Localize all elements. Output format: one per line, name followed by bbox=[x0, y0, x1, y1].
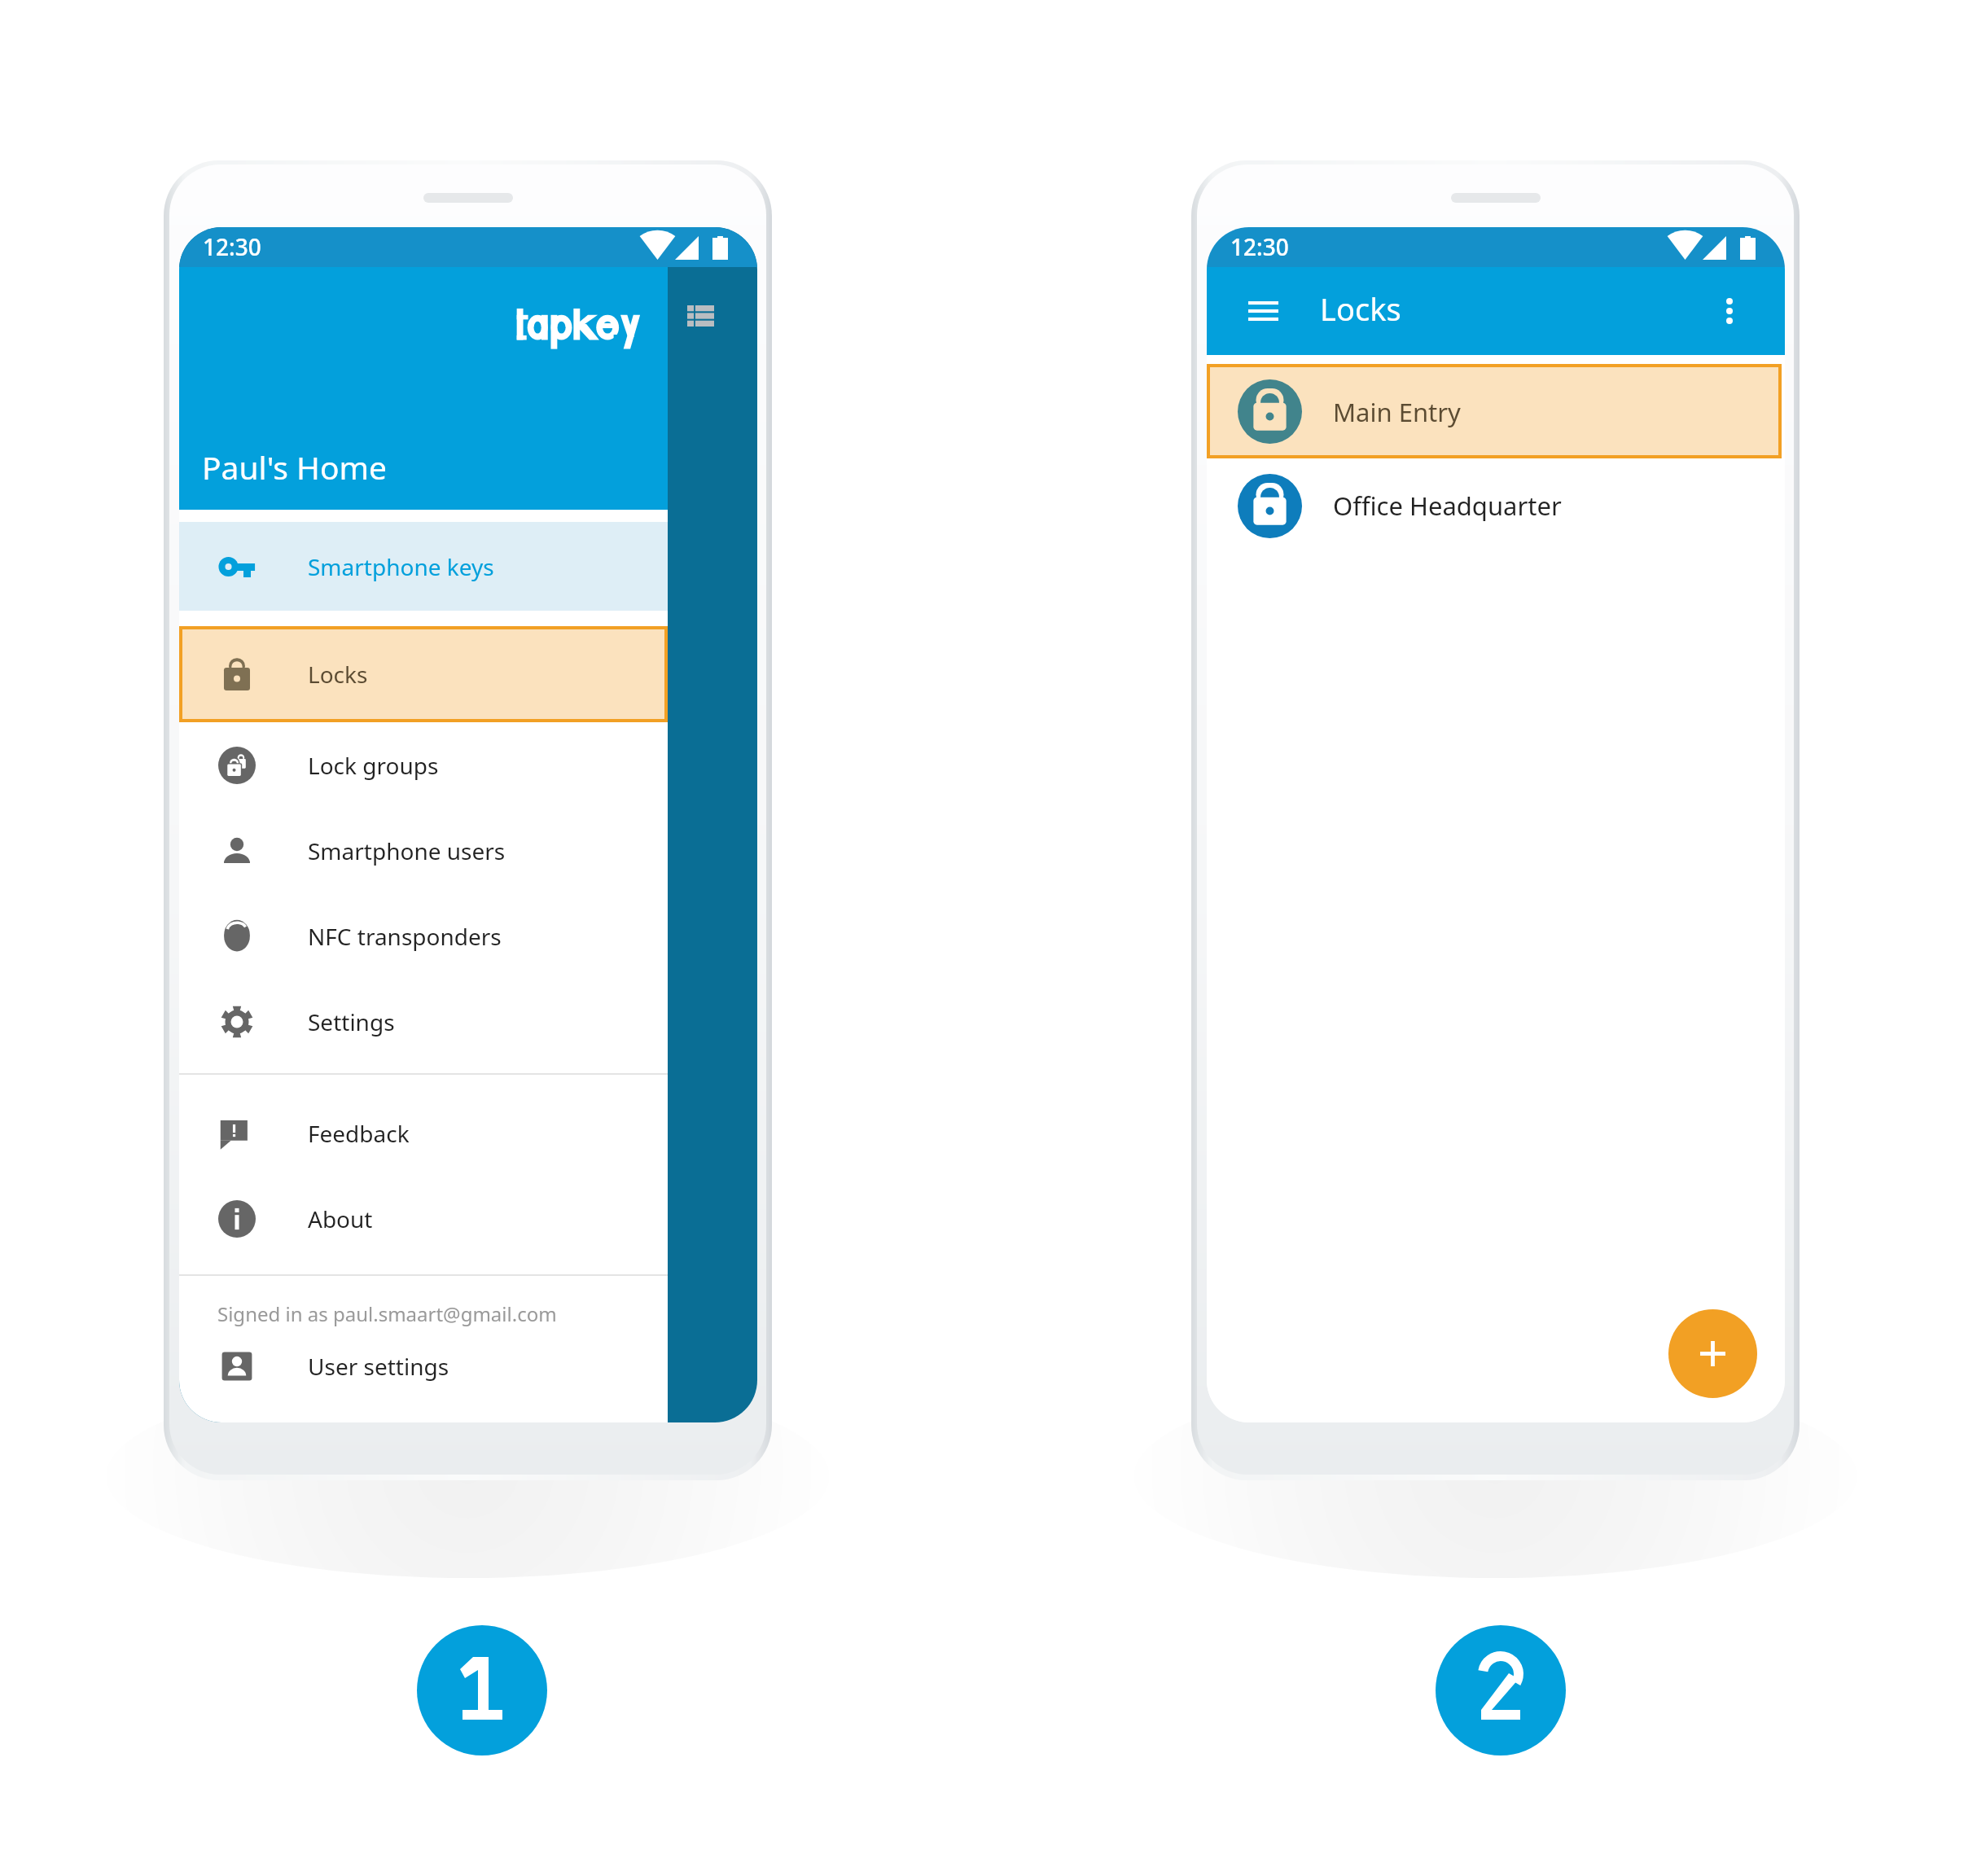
staticText: Smartphone users bbox=[308, 835, 506, 866]
staticText: Office Headquarter bbox=[1333, 489, 1562, 523]
button[interactable]: Lock groups bbox=[179, 722, 668, 808]
button[interactable]: Office Headquarter bbox=[1207, 458, 1785, 553]
staticText: Main Entry bbox=[1333, 395, 1461, 429]
staticText: Settings bbox=[308, 1006, 395, 1037]
button[interactable]: Open navigation drawer bbox=[1237, 285, 1289, 337]
staticText: Smartphone keys bbox=[308, 551, 494, 582]
button[interactable]: Main Entry bbox=[1207, 364, 1782, 458]
staticText: Paul's Home bbox=[202, 445, 388, 489]
staticText: Locks bbox=[308, 659, 368, 690]
button[interactable]: Feedback bbox=[179, 1090, 668, 1176]
staticText: User settings bbox=[308, 1351, 449, 1382]
button[interactable]: About bbox=[179, 1176, 668, 1261]
staticText: Locks bbox=[1320, 287, 1401, 330]
button[interactable]: Locks bbox=[179, 626, 668, 722]
button[interactable]: NFC transponders bbox=[179, 893, 668, 979]
staticText: About bbox=[308, 1203, 373, 1234]
staticText: Feedback bbox=[308, 1118, 410, 1149]
staticText: 12:30 bbox=[1230, 231, 1289, 262]
staticText: Lock groups bbox=[308, 750, 439, 781]
button[interactable]: Smartphone keys bbox=[179, 522, 668, 611]
staticText: 12:30 bbox=[203, 231, 261, 262]
button[interactable]: User settings bbox=[179, 1323, 668, 1409]
button[interactable]: Smartphone users bbox=[179, 808, 668, 893]
staticText: NFC transponders bbox=[308, 921, 502, 952]
button[interactable]: More options bbox=[1707, 288, 1752, 334]
button[interactable]: Add lock bbox=[1668, 1309, 1757, 1398]
staticText: Signed in as paul.smaart@gmail.com bbox=[217, 1300, 557, 1327]
button[interactable]: Settings bbox=[179, 979, 668, 1064]
